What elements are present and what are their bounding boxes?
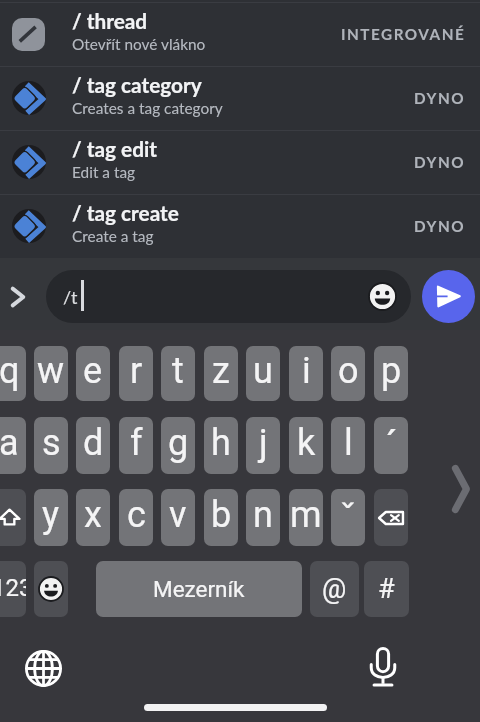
button[interactable]: / tag edit	[0, 130, 480, 194]
button[interactable]: u	[246, 346, 280, 401]
button[interactable]: Send	[422, 270, 475, 323]
button[interactable]: e	[76, 346, 110, 401]
staticText: s	[42, 422, 61, 464]
staticText: ´	[385, 423, 398, 470]
staticText: ˇ	[339, 496, 357, 543]
staticText: #	[378, 573, 395, 605]
button[interactable]: Voice input	[359, 643, 407, 691]
staticText: c	[127, 494, 146, 536]
staticText: v	[169, 494, 187, 536]
staticText: INTEGROVANÉ	[341, 25, 466, 43]
button[interactable]: k	[289, 417, 323, 474]
staticText: Mezerník	[153, 576, 245, 602]
staticText: b	[211, 494, 232, 536]
button[interactable]: p	[374, 346, 408, 401]
button[interactable]: Change keyboard	[19, 644, 67, 692]
button[interactable]: / tag create	[0, 194, 480, 258]
button[interactable]: /t	[46, 270, 411, 323]
button[interactable]: o	[331, 346, 365, 401]
staticText: m	[290, 494, 322, 536]
staticText: a	[0, 422, 19, 464]
staticText: h	[211, 422, 231, 464]
staticText: r	[130, 350, 143, 392]
staticText: j	[259, 422, 268, 464]
staticText: p	[381, 350, 402, 392]
button[interactable]: l	[331, 417, 365, 474]
button[interactable]: Shift	[0, 489, 26, 546]
button[interactable]: r	[119, 346, 153, 401]
button[interactable]: Mezerník	[96, 561, 302, 617]
staticText: k	[297, 422, 316, 464]
staticText: Edit a tag	[72, 163, 136, 181]
button[interactable]: c	[119, 489, 153, 546]
button[interactable]: j	[246, 417, 280, 474]
staticText: x	[84, 494, 102, 536]
button[interactable]: Hash	[364, 561, 409, 617]
staticText: /t	[63, 286, 78, 308]
button[interactable]: n	[246, 489, 280, 546]
staticText: DYNO	[414, 153, 466, 171]
staticText: Otevřít nové vlákno	[72, 35, 206, 53]
button[interactable]: Emoji	[34, 561, 68, 617]
button[interactable]: w	[34, 346, 68, 401]
staticText: DYNO	[414, 217, 466, 235]
staticText: / tag create	[72, 200, 179, 225]
button[interactable]: b	[204, 489, 238, 546]
button[interactable]: s	[34, 417, 68, 474]
button[interactable]: d	[76, 417, 110, 474]
button[interactable]: Expand actions	[0, 277, 36, 317]
staticText: Creates a tag category	[72, 99, 223, 117]
staticText: y	[42, 494, 60, 536]
button[interactable]: z	[204, 346, 238, 401]
staticText: t	[172, 350, 184, 392]
button[interactable]: h	[204, 417, 238, 474]
button[interactable]: Numbers	[0, 561, 26, 617]
staticText: o	[338, 350, 359, 392]
button[interactable]: Backspace	[374, 489, 408, 546]
staticText: / thread	[72, 8, 148, 33]
staticText: q	[0, 350, 20, 392]
button[interactable]: q	[0, 346, 26, 401]
button[interactable]: m	[289, 489, 323, 546]
staticText: g	[168, 422, 189, 464]
staticText: @	[322, 573, 347, 605]
staticText: / tag category	[72, 72, 202, 97]
button[interactable]: a	[0, 417, 26, 474]
staticText: z	[212, 350, 230, 392]
staticText: l	[344, 422, 353, 464]
button[interactable]: i	[289, 346, 323, 401]
button[interactable]: v	[161, 489, 195, 546]
staticText: f	[130, 422, 143, 464]
staticText: / tag edit	[72, 136, 157, 161]
staticText: n	[253, 494, 273, 536]
button[interactable]: ˇ	[331, 489, 365, 546]
staticText: 123	[0, 574, 26, 602]
staticText: i	[302, 350, 311, 392]
button[interactable]: / thread	[0, 2, 480, 66]
button[interactable]: t	[161, 346, 195, 401]
staticText: u	[253, 350, 273, 392]
button[interactable]: ´	[374, 417, 408, 474]
button[interactable]: At sign	[310, 561, 359, 617]
staticText: e	[83, 350, 103, 392]
button[interactable]: / tag category	[0, 66, 480, 130]
staticText: d	[83, 422, 104, 464]
button[interactable]: x	[76, 489, 110, 546]
button[interactable]: g	[161, 417, 195, 474]
staticText: w	[37, 350, 65, 392]
button[interactable]: y	[34, 489, 68, 546]
staticText: DYNO	[414, 89, 466, 107]
button[interactable]: f	[119, 417, 153, 474]
staticText: Create a tag	[72, 227, 154, 245]
button[interactable]: Emoji	[368, 282, 397, 311]
button[interactable]: Expand keyboard	[444, 462, 476, 516]
